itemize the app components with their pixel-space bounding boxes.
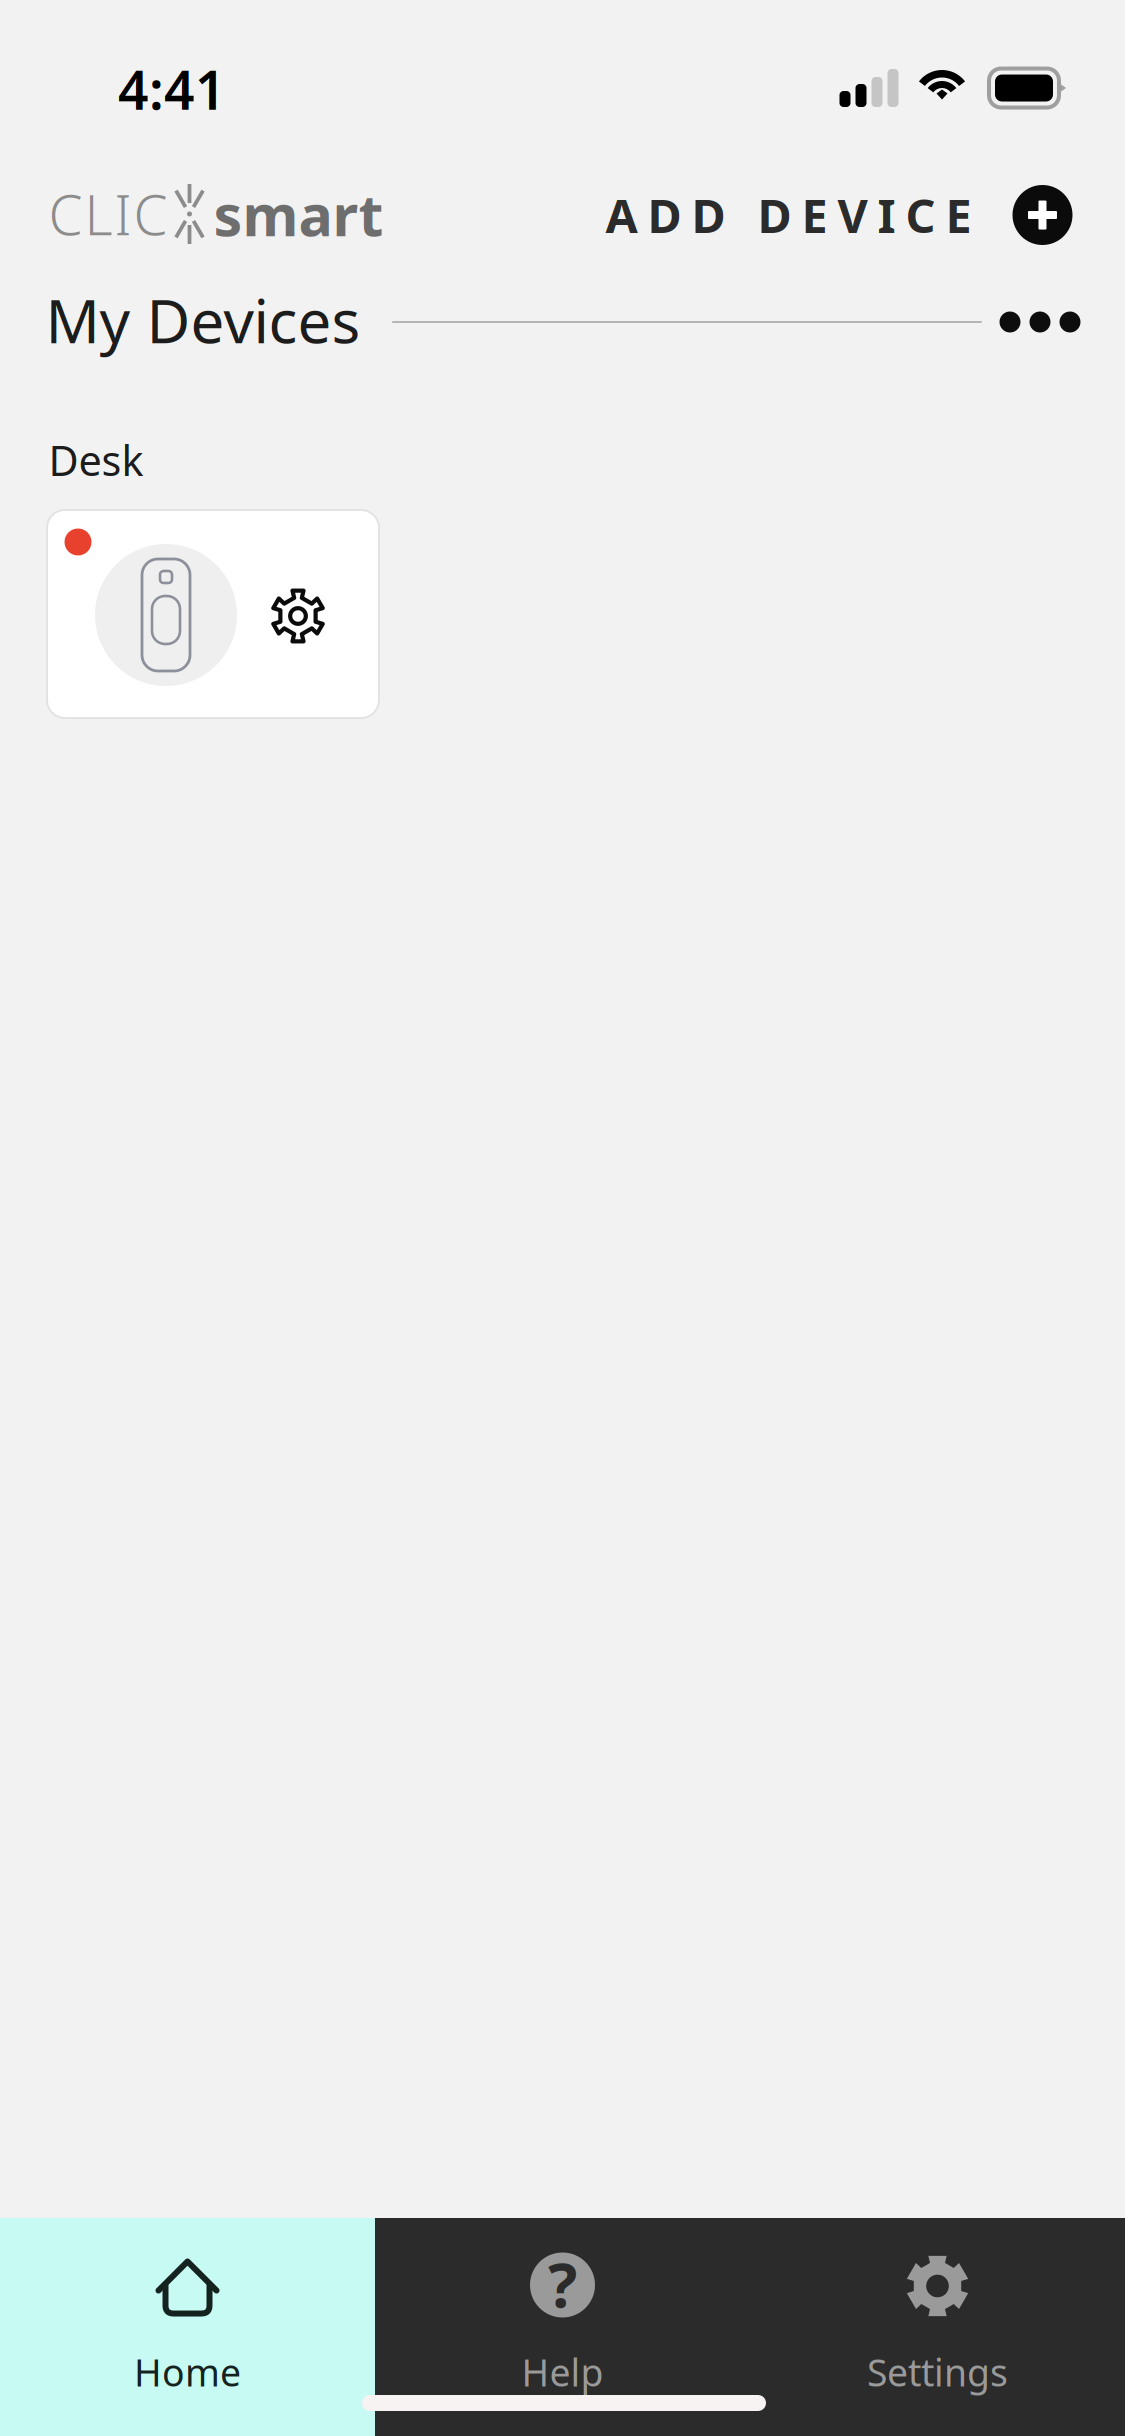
- staticText: Settings: [867, 2347, 1008, 2397]
- button[interactable]: Home: [0, 2218, 375, 2436]
- button[interactable]: ?: [375, 2218, 750, 2436]
- staticText: CLIC: [48, 178, 167, 250]
- button[interactable]: [47, 510, 379, 718]
- button[interactable]: Settings: [750, 2218, 1125, 2436]
- button[interactable]: ADD DEVICE: [605, 184, 1072, 246]
- staticText: ?: [548, 2243, 577, 2325]
- staticText: Home: [134, 2347, 241, 2397]
- staticText: Help: [521, 2347, 603, 2397]
- staticText: 4:41: [118, 54, 226, 124]
- staticText: ADD DEVICE: [605, 184, 971, 246]
- staticText: My Devices: [45, 280, 360, 360]
- staticText: Desk: [48, 433, 143, 487]
- button[interactable]: More options: [983, 295, 1096, 348]
- staticText: smart: [213, 176, 383, 252]
